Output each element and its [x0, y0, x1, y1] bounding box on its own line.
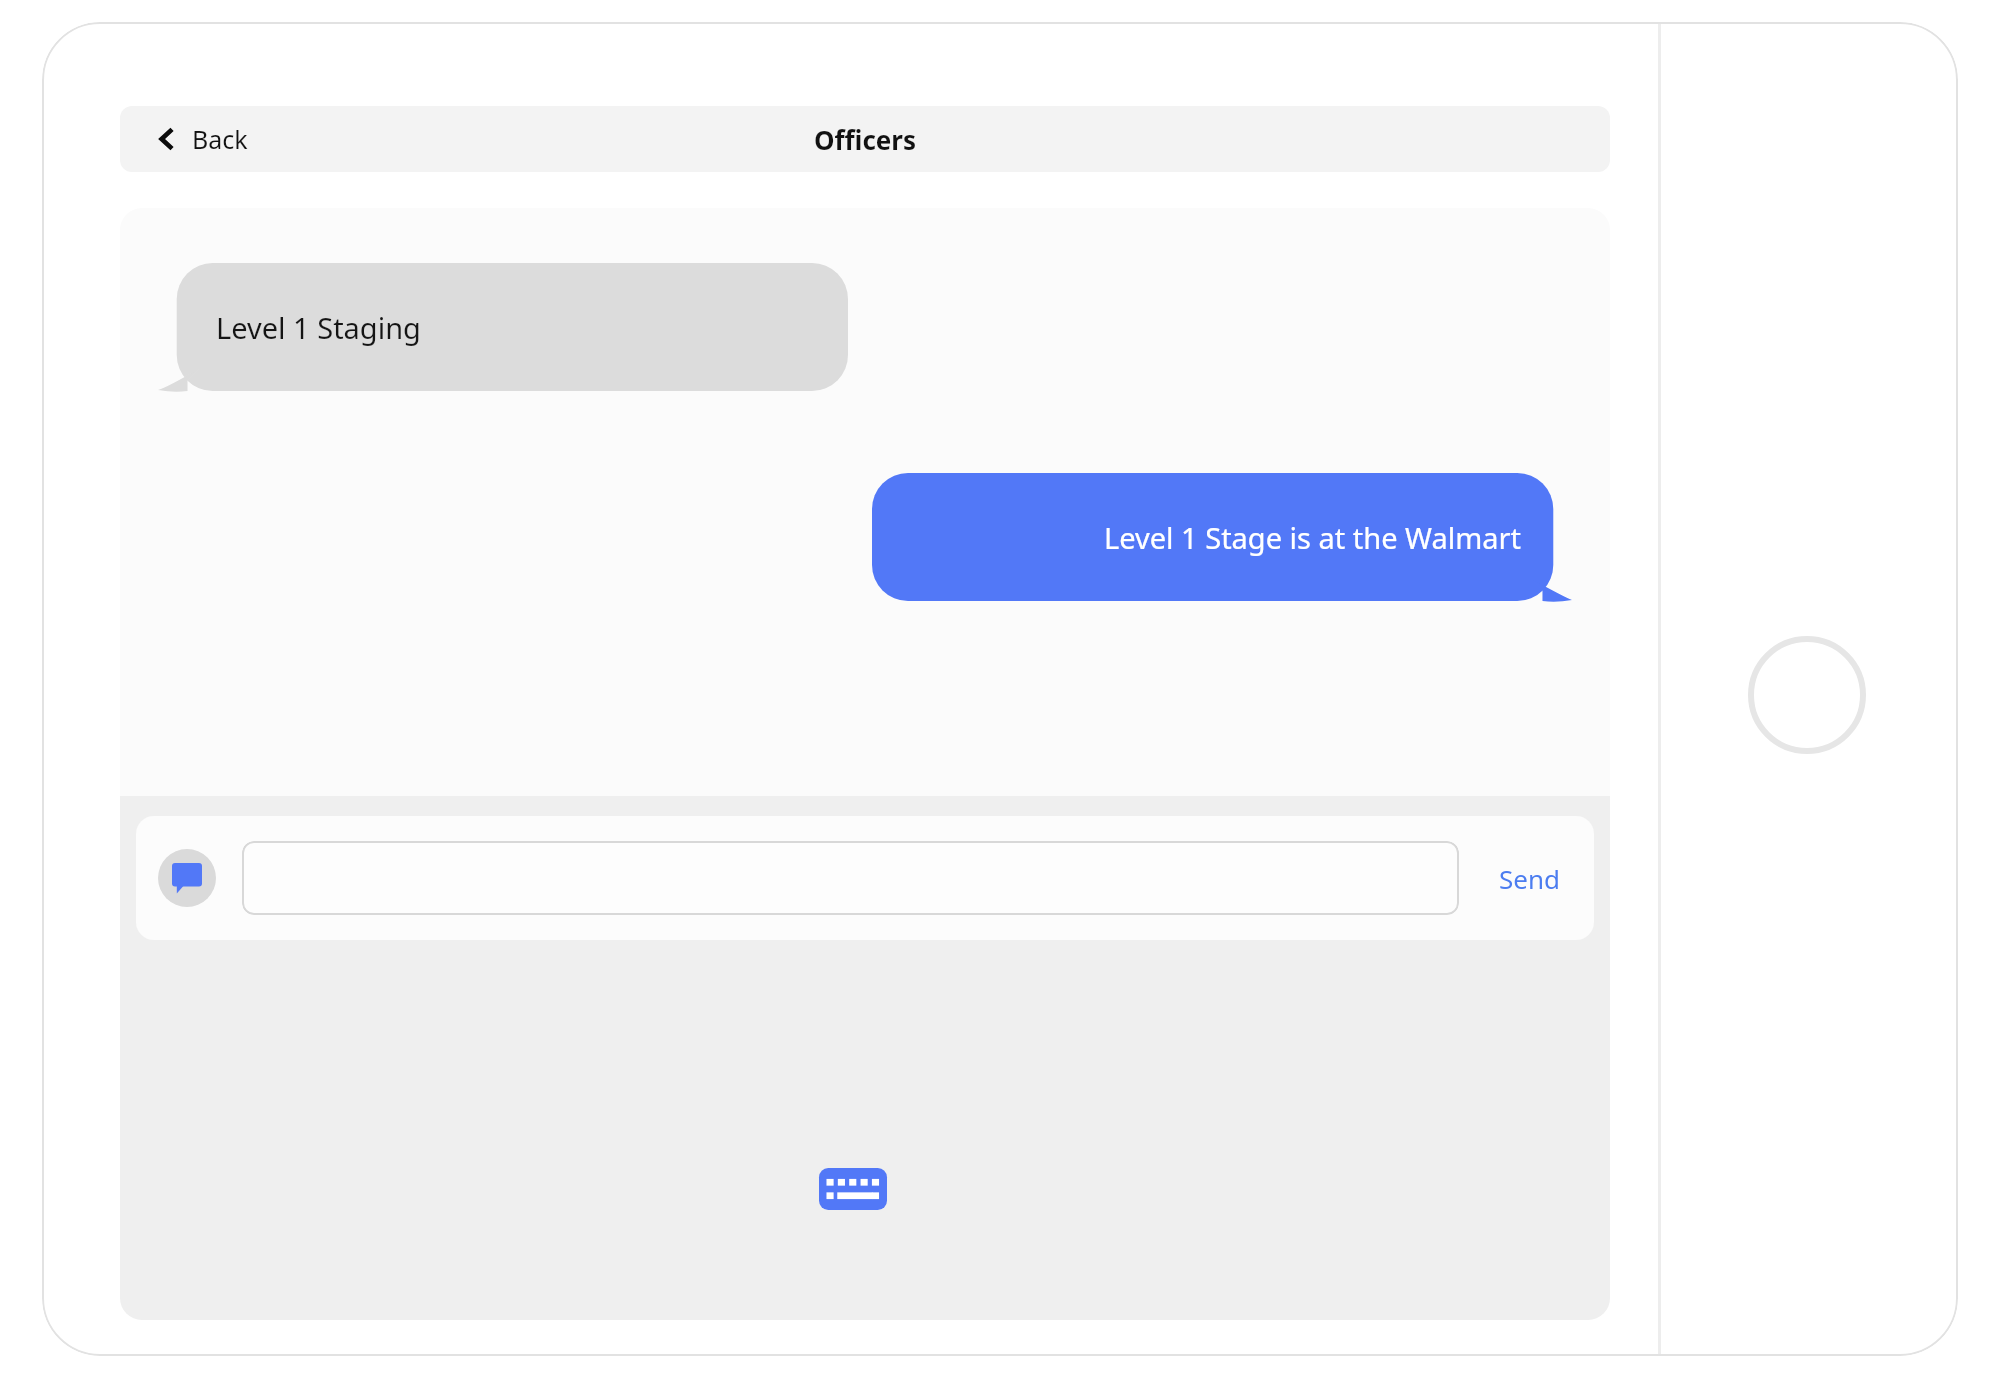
staticText: Send: [1499, 861, 1560, 896]
staticText: Back: [192, 122, 248, 156]
button[interactable]: Home: [1748, 636, 1866, 754]
staticText: Level 1 Staging: [216, 308, 421, 347]
button[interactable]: [242, 841, 1459, 915]
button[interactable]: Show keyboard: [811, 1161, 895, 1217]
button[interactable]: Back: [150, 116, 256, 162]
button[interactable]: Messages: [158, 849, 216, 907]
staticText: Level 1 Stage is at the Walmart: [1104, 518, 1522, 557]
button[interactable]: Send: [1487, 851, 1572, 906]
staticText: Officers: [814, 122, 917, 157]
